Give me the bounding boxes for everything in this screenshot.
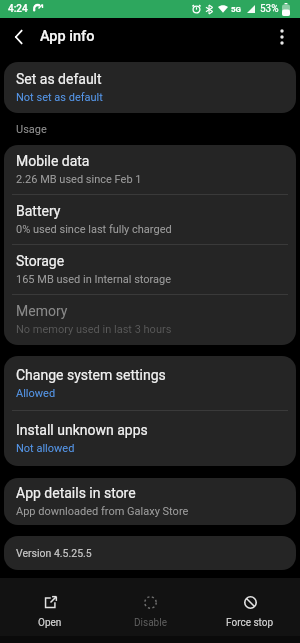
button[interactable]: Mobile data	[4, 145, 296, 194]
staticText: Battery	[16, 203, 61, 219]
button[interactable]: Install unknown apps	[4, 411, 296, 465]
staticText: Usage	[16, 123, 47, 136]
button[interactable]: Storage	[4, 245, 296, 294]
staticText: Mobile data	[16, 153, 90, 169]
staticText: Change system settings	[16, 367, 166, 383]
button[interactable]: Memory	[4, 295, 296, 344]
staticText: Force stop	[226, 617, 274, 629]
button[interactable]: App details in store	[4, 478, 296, 525]
staticText: Not allowed	[16, 442, 75, 455]
button[interactable]: Change system settings	[4, 356, 296, 410]
button[interactable]: Force stop	[200, 578, 300, 636]
staticText: Set as default	[16, 71, 102, 87]
staticText: 4:24	[8, 3, 28, 15]
staticText: App info	[40, 28, 95, 45]
staticText: Install unknown apps	[16, 422, 148, 438]
staticText: 53%	[260, 3, 279, 15]
staticText: Disable	[134, 617, 167, 629]
staticText: 0% used since last fully charged	[16, 223, 172, 236]
staticText: App details in store	[16, 485, 136, 501]
button[interactable]	[264, 18, 300, 55]
staticText: 5G	[231, 5, 242, 14]
staticText: 2.26 MB used since Feb 1	[16, 173, 142, 186]
button[interactable]: Disable	[100, 578, 200, 636]
staticText: Not set as default	[16, 91, 103, 104]
staticText: 165 MB used in Internal storage	[16, 273, 172, 286]
staticText: Version 4.5.25.5	[16, 547, 92, 559]
staticText: No memory used in last 3 hours	[16, 323, 172, 336]
staticText: Memory	[16, 303, 68, 319]
button[interactable]: Open	[0, 578, 100, 636]
staticText: Storage	[16, 253, 65, 269]
staticText: App downloaded from Galaxy Store	[16, 505, 189, 518]
button[interactable]: Set as default	[4, 62, 296, 113]
staticText: Allowed	[16, 387, 56, 400]
button[interactable]	[0, 18, 40, 55]
staticText: Open	[38, 617, 62, 629]
button[interactable]: Battery	[4, 195, 296, 244]
